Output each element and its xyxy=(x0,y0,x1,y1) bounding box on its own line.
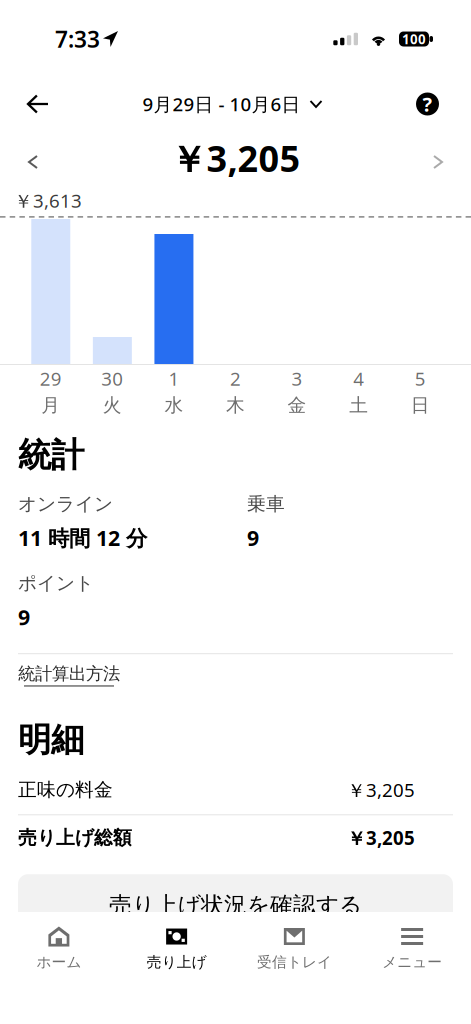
staticText: 売り上げ状況を確認する xyxy=(109,891,362,919)
staticText: 火 xyxy=(103,394,122,417)
staticText: 11 時間 12 分 xyxy=(18,524,147,552)
staticText: 100 xyxy=(402,30,426,48)
button[interactable]: Help xyxy=(402,77,453,131)
staticText: 1 xyxy=(168,366,179,391)
staticText: 9 xyxy=(247,524,259,552)
button[interactable]: Back xyxy=(13,80,63,127)
button[interactable]: Next week xyxy=(417,131,459,185)
button[interactable]: 統計算出方法 xyxy=(18,654,120,686)
staticText: 売り上げ総額 xyxy=(18,826,132,849)
staticText: 30 xyxy=(101,366,123,391)
staticText: 正味の料金 xyxy=(18,778,113,801)
staticText: 4 xyxy=(353,366,364,391)
staticText: 水 xyxy=(164,394,183,417)
staticText: 木 xyxy=(226,394,245,417)
staticText: 月 xyxy=(41,394,60,417)
staticText: 乗車 xyxy=(247,493,285,516)
staticText: 統計 xyxy=(18,435,84,476)
staticText: 9 xyxy=(18,603,30,631)
button[interactable]: Previous week xyxy=(12,131,54,185)
staticText: 金 xyxy=(288,394,307,417)
staticText: 明細 xyxy=(18,719,84,760)
staticText: メニュー xyxy=(382,953,442,971)
staticText: ￥3,205 xyxy=(347,825,415,850)
button[interactable]: 9月29日 - 10月6日 xyxy=(134,84,330,124)
staticText: 5 xyxy=(415,366,426,391)
staticText: 7:33 xyxy=(55,24,100,54)
staticText: ホーム xyxy=(36,953,81,971)
staticText: 9月29日 - 10月6日 xyxy=(142,92,300,116)
button[interactable]: 売り上げ xyxy=(118,912,236,985)
staticText: 日 xyxy=(411,394,430,417)
staticText: 土 xyxy=(349,394,368,417)
staticText: ￥3,613 xyxy=(14,188,82,213)
staticText: 3 xyxy=(292,366,303,391)
staticText: ポイント xyxy=(18,572,94,595)
staticText: 受信トレイ xyxy=(257,953,332,971)
staticText: ￥3,205 xyxy=(347,777,415,802)
staticText: 売り上げ xyxy=(147,953,207,971)
button[interactable]: 売り上げ状況を確認する xyxy=(18,874,453,936)
staticText: オンライン xyxy=(18,493,113,516)
staticText: 統計算出方法 xyxy=(18,663,120,684)
staticText: ? xyxy=(422,91,432,117)
staticText: ￥3,205 xyxy=(170,134,300,182)
button[interactable]: 受信トレイ xyxy=(235,912,353,985)
staticText: 2 xyxy=(230,366,241,391)
button[interactable]: メニュー xyxy=(353,912,471,985)
button[interactable]: ホーム xyxy=(0,912,118,985)
staticText: 29 xyxy=(40,366,62,391)
